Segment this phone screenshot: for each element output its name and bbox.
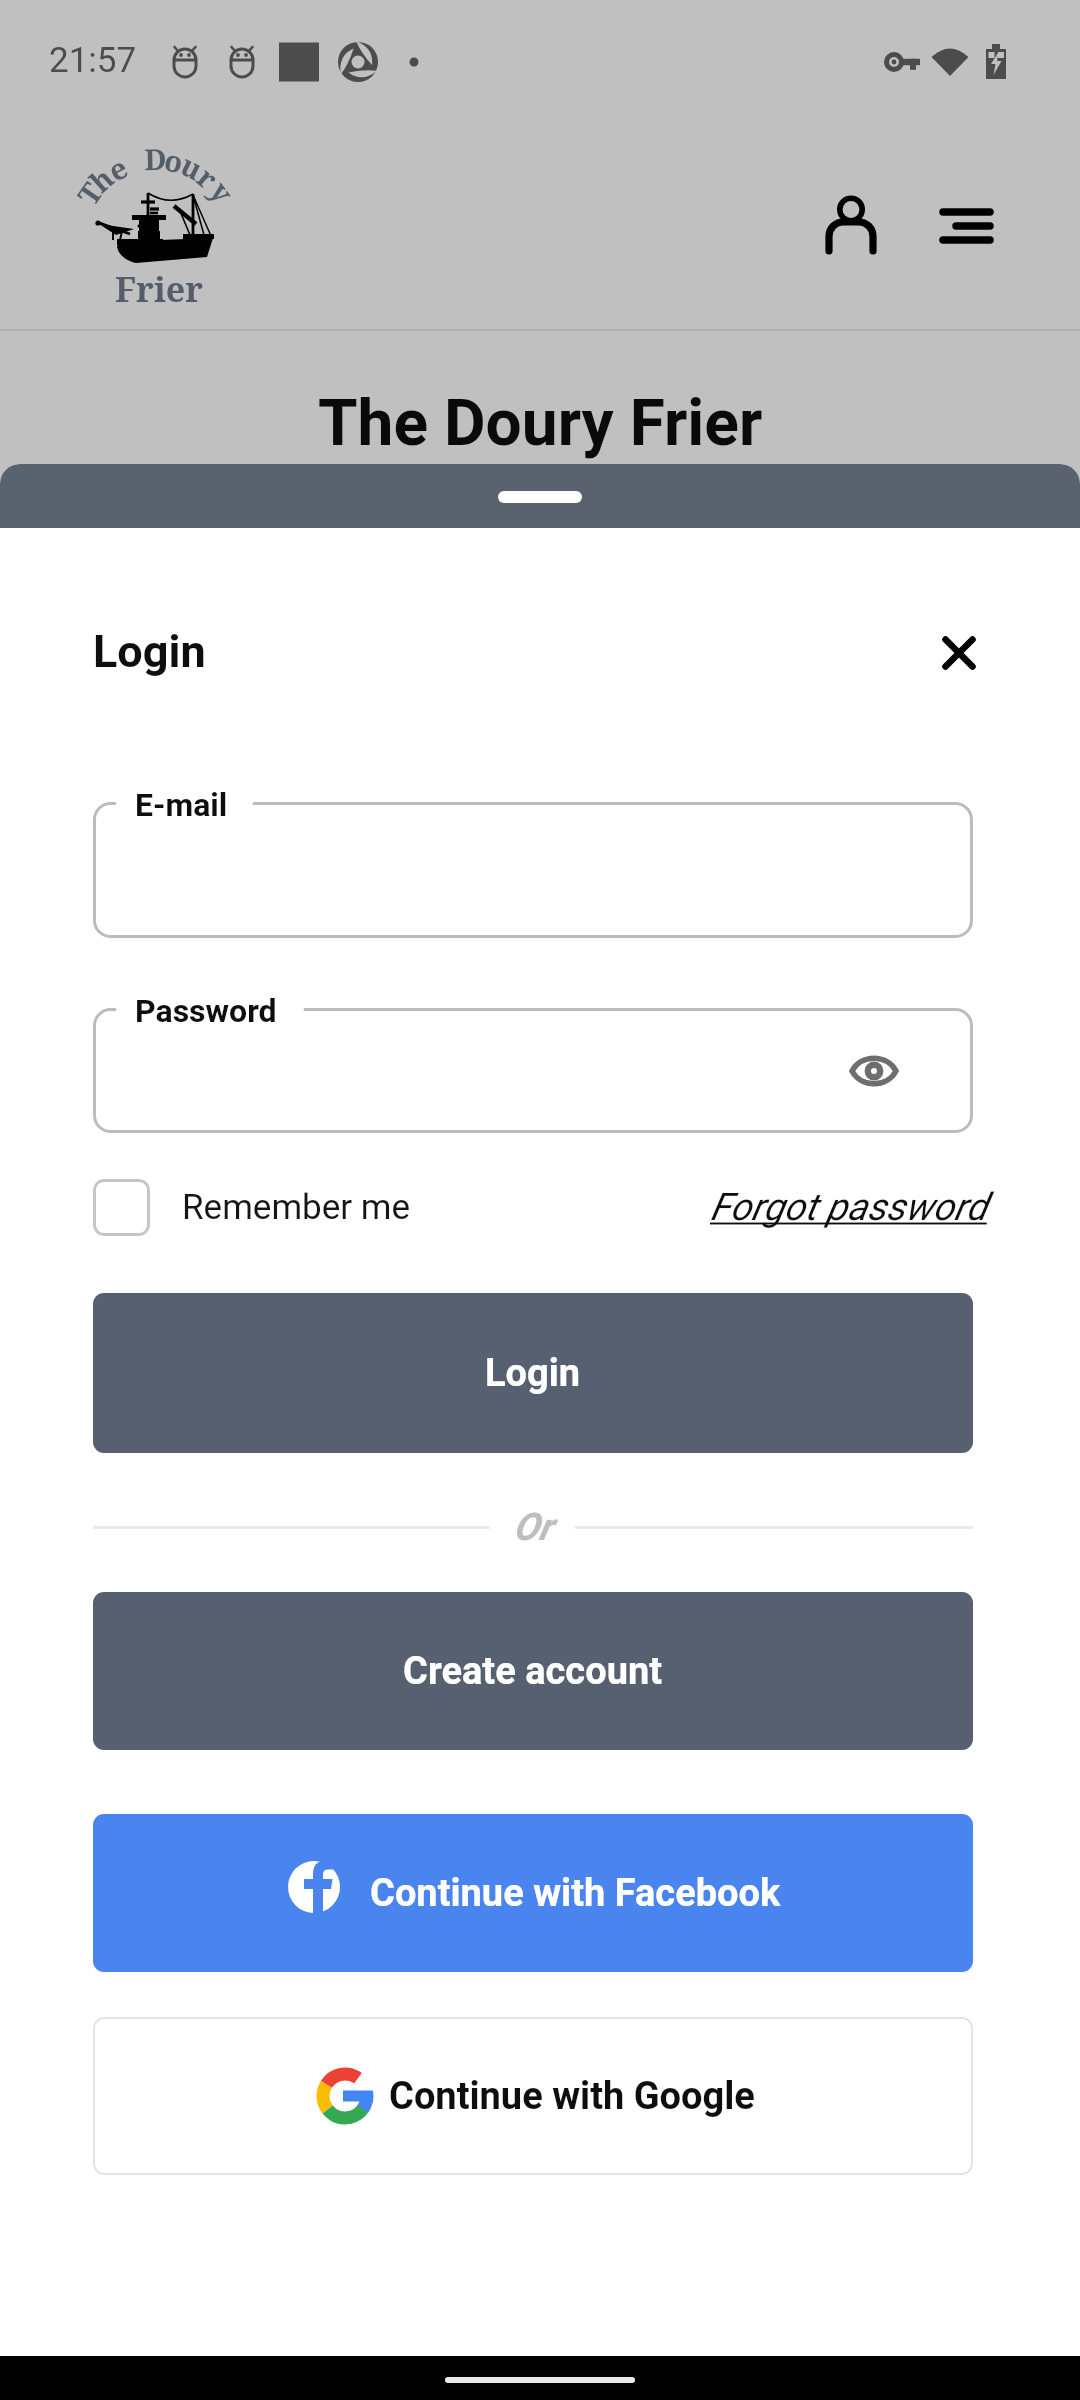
button[interactable]: Account: [805, 181, 897, 273]
staticText: Remember me: [182, 1187, 411, 1228]
button[interactable]: Close: [920, 614, 997, 691]
staticText: The Doury Frier: [318, 386, 763, 461]
staticText: Create account: [403, 1649, 663, 1694]
staticText: T: [68, 175, 111, 212]
button[interactable]: Remember me: [93, 1179, 411, 1236]
staticText: Login: [93, 625, 206, 678]
button[interactable]: Create account: [93, 1592, 973, 1750]
button[interactable]: Forgot password: [710, 1185, 987, 1230]
staticText: o: [161, 139, 187, 181]
staticText: Frier: [115, 266, 204, 312]
staticText: Continue with Google: [389, 2074, 755, 2119]
staticText: r: [189, 157, 227, 198]
staticText: D: [144, 139, 167, 178]
button[interactable]: Continue with Facebook: [93, 1814, 973, 1972]
button[interactable]: Show password: [836, 1033, 912, 1109]
staticText: Login: [485, 1351, 581, 1396]
staticText: 21:57: [49, 40, 137, 81]
staticText: E-mail: [135, 786, 228, 824]
button[interactable]: Continue with Google: [93, 2017, 973, 2175]
button[interactable]: Login: [93, 1293, 973, 1453]
staticText: Or: [513, 1505, 552, 1550]
staticText: Continue with Facebook: [370, 1871, 781, 1916]
staticText: e: [101, 147, 134, 190]
staticText: Password: [135, 992, 277, 1030]
staticText: y: [202, 173, 243, 210]
button[interactable]: E-mail: [93, 802, 973, 938]
staticText: h: [81, 158, 121, 201]
button[interactable]: Show password: [93, 1008, 973, 1133]
button[interactable]: Menu: [919, 180, 1011, 272]
staticText: u: [174, 145, 209, 188]
